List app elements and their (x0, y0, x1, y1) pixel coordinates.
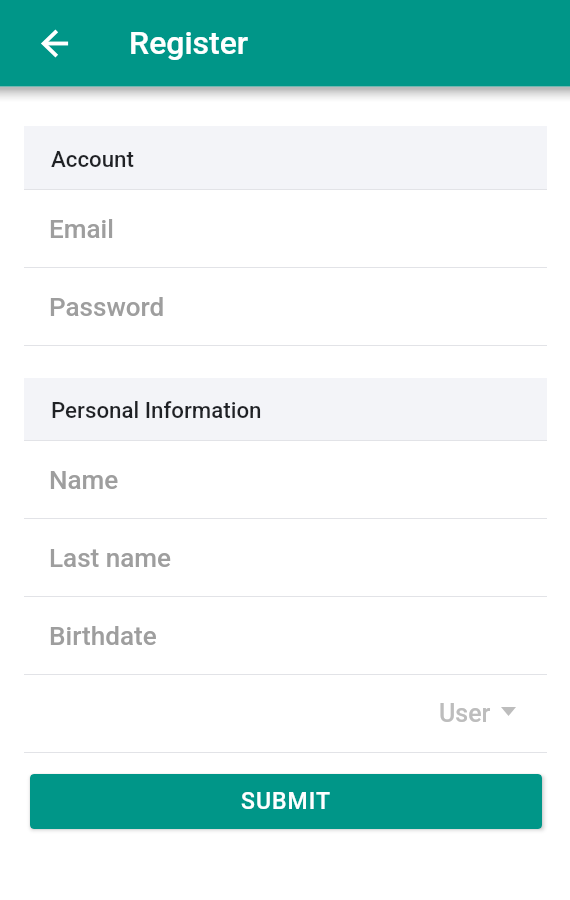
staticText: Last name (49, 543, 172, 574)
staticText: Personal Information (51, 397, 262, 423)
button[interactable]: Birthdate (24, 597, 547, 674)
staticText: User (439, 699, 491, 728)
staticText: Password (49, 292, 165, 323)
staticText: Email (49, 214, 114, 245)
button[interactable]: Password (24, 268, 547, 345)
button[interactable]: Name (24, 441, 547, 518)
button[interactable]: Email (24, 190, 547, 267)
button[interactable]: SUBMIT (30, 774, 542, 829)
staticText: Account (51, 146, 134, 172)
button[interactable]: Last name (24, 519, 547, 596)
button[interactable]: Back (30, 18, 80, 68)
button[interactable]: User (24, 675, 547, 752)
staticText: Name (49, 465, 119, 496)
staticText: Birthdate (49, 621, 157, 652)
staticText: SUBMIT (241, 788, 331, 815)
staticText: Register (129, 24, 249, 62)
